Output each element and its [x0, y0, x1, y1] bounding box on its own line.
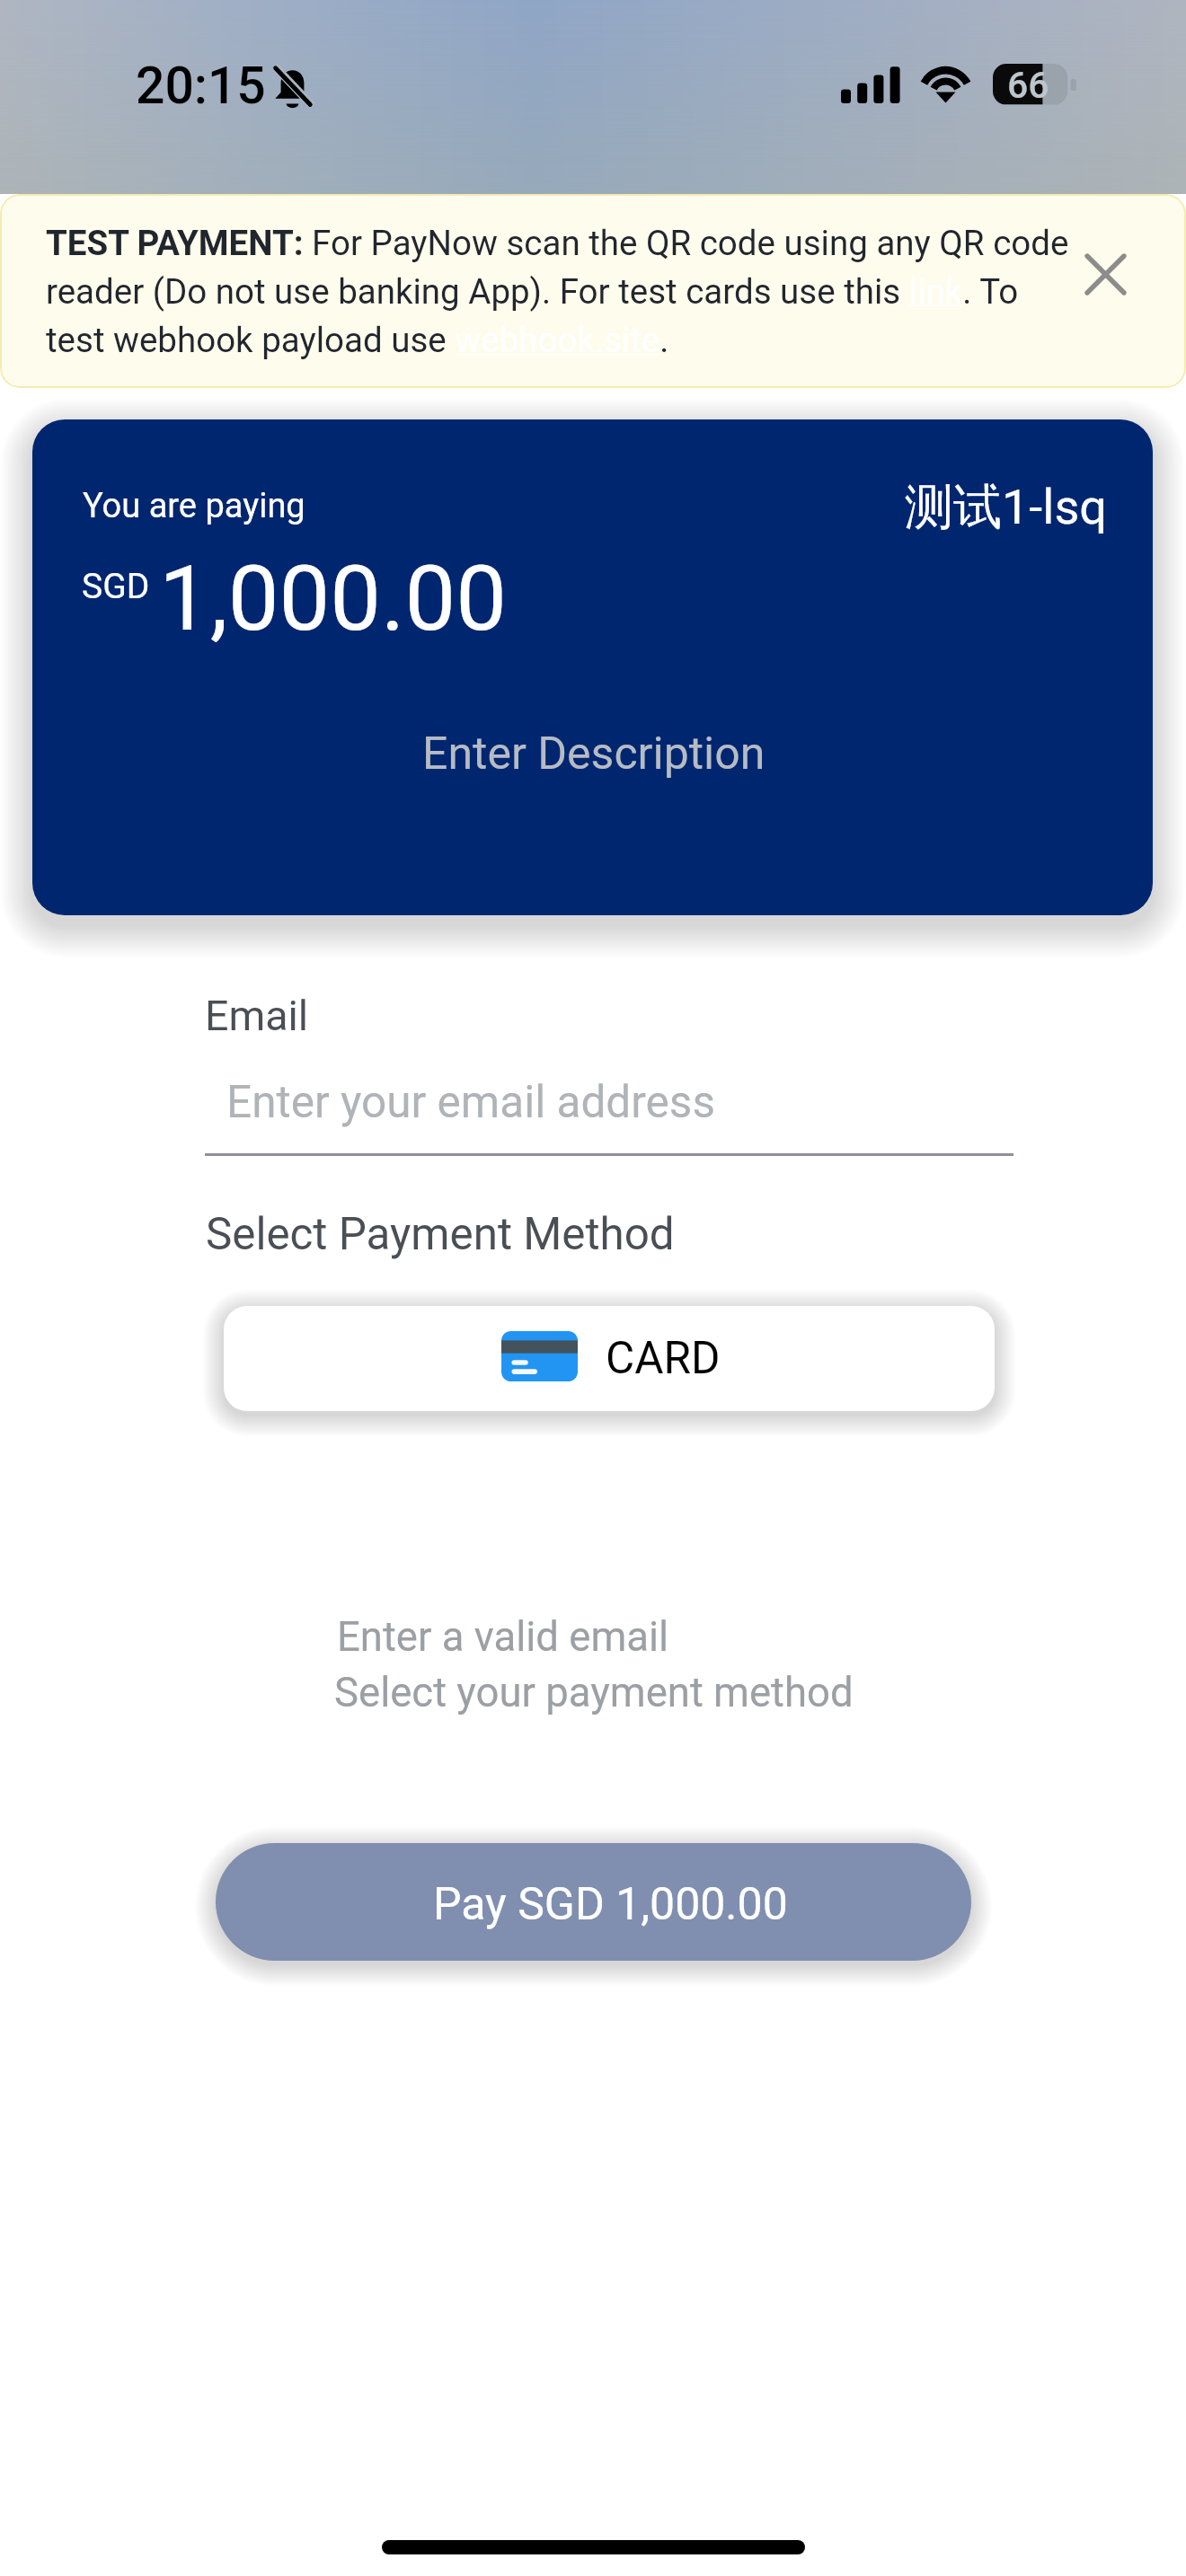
staticText: TEST PAYMENT: For PayNow scan the QR cod…	[46, 223, 1077, 360]
staticText: Email	[205, 992, 309, 1040]
staticText: Select your payment method	[334, 1669, 854, 1716]
staticText: 66	[1007, 64, 1049, 105]
staticText: Enter your email address	[226, 1076, 715, 1128]
staticText: 20:15	[136, 56, 266, 116]
button[interactable]: Close banner	[1071, 240, 1139, 308]
staticText: 测试1-lsq	[905, 477, 1107, 538]
staticText: Pay SGD 1,000.00	[433, 1878, 788, 1931]
staticText: Enter a valid email	[337, 1613, 669, 1661]
staticText: 1,000.00	[159, 545, 508, 651]
staticText: You are paying	[83, 486, 305, 526]
staticText: SGD	[82, 566, 150, 607]
button[interactable]: CARD	[224, 1306, 995, 1411]
button[interactable]: Pay SGD 1,000.00	[216, 1843, 971, 1961]
staticText: Select Payment Method	[206, 1208, 675, 1260]
staticText: CARD	[606, 1332, 721, 1384]
staticText: Enter Description	[422, 728, 766, 781]
